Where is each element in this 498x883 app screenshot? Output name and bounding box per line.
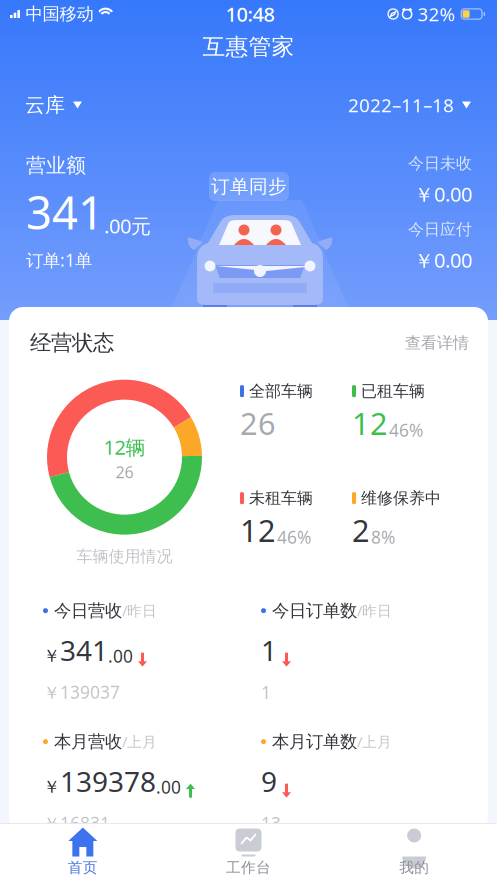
staticText: /上月 — [122, 732, 157, 751]
staticText: 订单:1单 — [26, 248, 92, 271]
staticText: 12辆 — [103, 434, 145, 460]
staticText: 经营状态 — [30, 330, 114, 356]
staticText: 工作台 — [226, 858, 271, 876]
staticText: 本月订单数 — [272, 731, 357, 752]
staticText: 今日营收 — [54, 600, 122, 621]
staticText: 今日应付 — [408, 220, 472, 239]
staticText: ￥139037 — [43, 681, 120, 704]
staticText: 查看详情 — [405, 333, 469, 353]
staticText — [399, 7, 402, 21]
staticText: ￥16831 — [43, 812, 110, 835]
staticText: 今日订单数 — [272, 600, 357, 621]
button[interactable]: 查看详情 — [395, 329, 469, 357]
staticText: 车辆使用情况 — [76, 547, 172, 566]
staticText: ￥ — [43, 776, 60, 798]
staticText: 1 — [261, 681, 271, 704]
staticText: 2022–11–18 — [348, 93, 454, 117]
staticText: 今日未收 — [408, 154, 472, 173]
staticText: .00 — [156, 776, 181, 799]
staticText: 46% — [277, 525, 311, 548]
button[interactable]: 2022–11–18 — [344, 86, 475, 124]
staticText: 13 — [261, 812, 281, 835]
staticText: 本月营收 — [54, 731, 122, 752]
staticText: /上月 — [357, 732, 392, 751]
staticText: 12 — [240, 510, 276, 550]
staticText: 订单同步 — [211, 175, 287, 198]
button[interactable]: 工作台 — [166, 820, 331, 883]
staticText: ￥ — [43, 645, 60, 667]
staticText: 139378 — [60, 762, 156, 800]
staticText: 已租车辆 — [361, 381, 425, 401]
staticText: 未租车辆 — [249, 488, 313, 508]
staticText: .00元 — [104, 212, 151, 239]
staticText: 26 — [115, 461, 133, 482]
staticText: 中国移动 — [20, 3, 98, 25]
staticText: 2 — [352, 510, 370, 550]
staticText: .00 — [108, 645, 133, 668]
button[interactable]: 首页 — [0, 820, 166, 883]
staticText: /昨日 — [357, 601, 392, 620]
staticText: 首页 — [68, 858, 98, 876]
staticText: 341 — [60, 631, 108, 669]
staticText: ￥0.00 — [414, 247, 472, 273]
staticText: /昨日 — [122, 601, 157, 620]
staticText: 341 — [26, 182, 104, 242]
staticText: 互惠管家 — [202, 33, 294, 61]
staticText: 8% — [371, 525, 395, 548]
staticText: 全部车辆 — [249, 381, 313, 401]
staticText: 营业额 — [26, 153, 86, 178]
button[interactable]: 云库 — [21, 86, 86, 124]
button[interactable]: 我的 — [331, 820, 497, 883]
staticText: ￥0.00 — [414, 181, 472, 207]
staticText: 32% — [413, 2, 461, 26]
button[interactable]: 订单同步 — [209, 172, 289, 201]
staticText: 维修保养中 — [361, 488, 441, 508]
staticText: 10:48 — [226, 1, 275, 27]
staticText: 我的 — [399, 858, 429, 876]
staticText: 12 — [352, 403, 388, 443]
staticText: 26 — [240, 403, 276, 443]
staticText: 46% — [389, 418, 423, 441]
staticText: 云库 — [25, 93, 65, 117]
staticText: 1 — [261, 631, 277, 669]
staticText: 9 — [261, 762, 277, 800]
